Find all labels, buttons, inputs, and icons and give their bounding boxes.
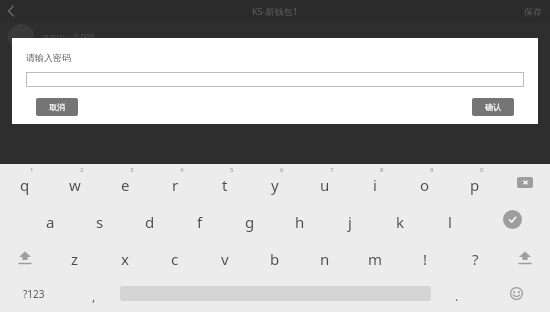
staticText: v bbox=[221, 249, 229, 269]
button[interactable]: 9 bbox=[400, 164, 450, 201]
staticText: n bbox=[320, 249, 330, 269]
staticText: y bbox=[271, 175, 279, 195]
staticText: 8 bbox=[380, 166, 384, 174]
button[interactable]: k bbox=[375, 201, 425, 238]
staticText: 可积分：0.000 bbox=[42, 32, 95, 43]
button[interactable]: 1 bbox=[0, 164, 50, 201]
button[interactable]: s bbox=[75, 201, 125, 238]
staticText: 6 bbox=[280, 166, 284, 174]
staticText: w bbox=[69, 175, 81, 195]
staticText: 3 bbox=[130, 166, 134, 174]
staticText: , bbox=[92, 288, 96, 304]
staticText: p bbox=[470, 175, 480, 195]
staticText: o bbox=[420, 175, 430, 195]
button[interactable]: ! bbox=[400, 238, 450, 275]
button[interactable]: Enter bbox=[475, 201, 550, 238]
button[interactable]: 4 bbox=[150, 164, 200, 201]
button[interactable]: 8 bbox=[350, 164, 400, 201]
button[interactable]: n bbox=[300, 238, 350, 275]
staticText: c bbox=[171, 249, 179, 269]
staticText: ! bbox=[423, 249, 428, 269]
staticText: . bbox=[455, 288, 459, 304]
staticText: m bbox=[368, 249, 383, 269]
staticText: ?123 bbox=[23, 287, 45, 301]
button[interactable]: v bbox=[200, 238, 250, 275]
staticText: 1 bbox=[30, 166, 34, 174]
button[interactable]: j bbox=[325, 201, 375, 238]
button[interactable]: d bbox=[125, 201, 175, 238]
staticText: 5 bbox=[230, 166, 234, 174]
staticText: 取消 bbox=[49, 102, 65, 112]
staticText: 4 bbox=[180, 166, 184, 174]
button[interactable]: . bbox=[431, 275, 483, 312]
staticText: KS-新钱包1 bbox=[252, 5, 298, 17]
staticText: x bbox=[121, 249, 129, 269]
staticText: h bbox=[295, 212, 305, 232]
button[interactable]: Back bbox=[0, 0, 22, 22]
staticText: z bbox=[71, 249, 79, 269]
button[interactable]: Shift bbox=[0, 238, 50, 275]
button[interactable]: 6 bbox=[250, 164, 300, 201]
button[interactable]: m bbox=[350, 238, 400, 275]
staticText: j bbox=[348, 212, 352, 232]
staticText: g bbox=[245, 212, 255, 232]
staticText: 0 bbox=[480, 166, 484, 174]
button[interactable]: Emoji bbox=[483, 275, 550, 312]
button[interactable]: ? bbox=[450, 238, 500, 275]
button[interactable]: x bbox=[100, 238, 150, 275]
staticText: d bbox=[145, 212, 155, 232]
staticText: l bbox=[448, 212, 452, 232]
button[interactable]: Shift bbox=[500, 238, 550, 275]
staticText: e bbox=[121, 175, 130, 195]
button[interactable]: 保存 bbox=[524, 6, 542, 17]
staticText: s bbox=[96, 212, 104, 232]
button[interactable]: g bbox=[225, 201, 275, 238]
staticText: 9 bbox=[430, 166, 434, 174]
staticText: u bbox=[320, 175, 330, 195]
staticText: 确认 bbox=[485, 102, 501, 112]
staticText: i bbox=[373, 175, 377, 195]
button[interactable]: 确认 bbox=[472, 98, 514, 116]
button[interactable] bbox=[26, 72, 524, 87]
staticText: q bbox=[20, 175, 30, 195]
button[interactable]: 7 bbox=[300, 164, 350, 201]
button[interactable]: ?123 bbox=[0, 275, 68, 312]
staticText: a bbox=[46, 212, 55, 232]
button[interactable]: 取消 bbox=[36, 98, 78, 116]
staticText: 请输入密码 bbox=[26, 52, 71, 63]
staticText: b bbox=[270, 249, 280, 269]
button[interactable]: , bbox=[68, 275, 120, 312]
staticText: r bbox=[172, 175, 179, 195]
button[interactable]: b bbox=[250, 238, 300, 275]
button[interactable]: 0 bbox=[450, 164, 500, 201]
button[interactable]: f bbox=[175, 201, 225, 238]
button[interactable]: 2 bbox=[50, 164, 100, 201]
staticText: f bbox=[197, 212, 203, 232]
staticText: 2 bbox=[80, 166, 84, 174]
button[interactable]: z bbox=[50, 238, 100, 275]
button[interactable]: 5 bbox=[200, 164, 250, 201]
button[interactable]: a bbox=[25, 201, 75, 238]
staticText: 7 bbox=[330, 166, 334, 174]
staticText: ? bbox=[472, 249, 479, 269]
button[interactable]: c bbox=[150, 238, 200, 275]
button[interactable]: h bbox=[275, 201, 325, 238]
staticText: k bbox=[396, 212, 405, 232]
staticText: 保存 bbox=[524, 6, 542, 17]
button[interactable]: Backspace bbox=[500, 164, 550, 201]
button[interactable]: l bbox=[425, 201, 475, 238]
button[interactable]: 3 bbox=[100, 164, 150, 201]
staticText: t bbox=[222, 175, 228, 195]
